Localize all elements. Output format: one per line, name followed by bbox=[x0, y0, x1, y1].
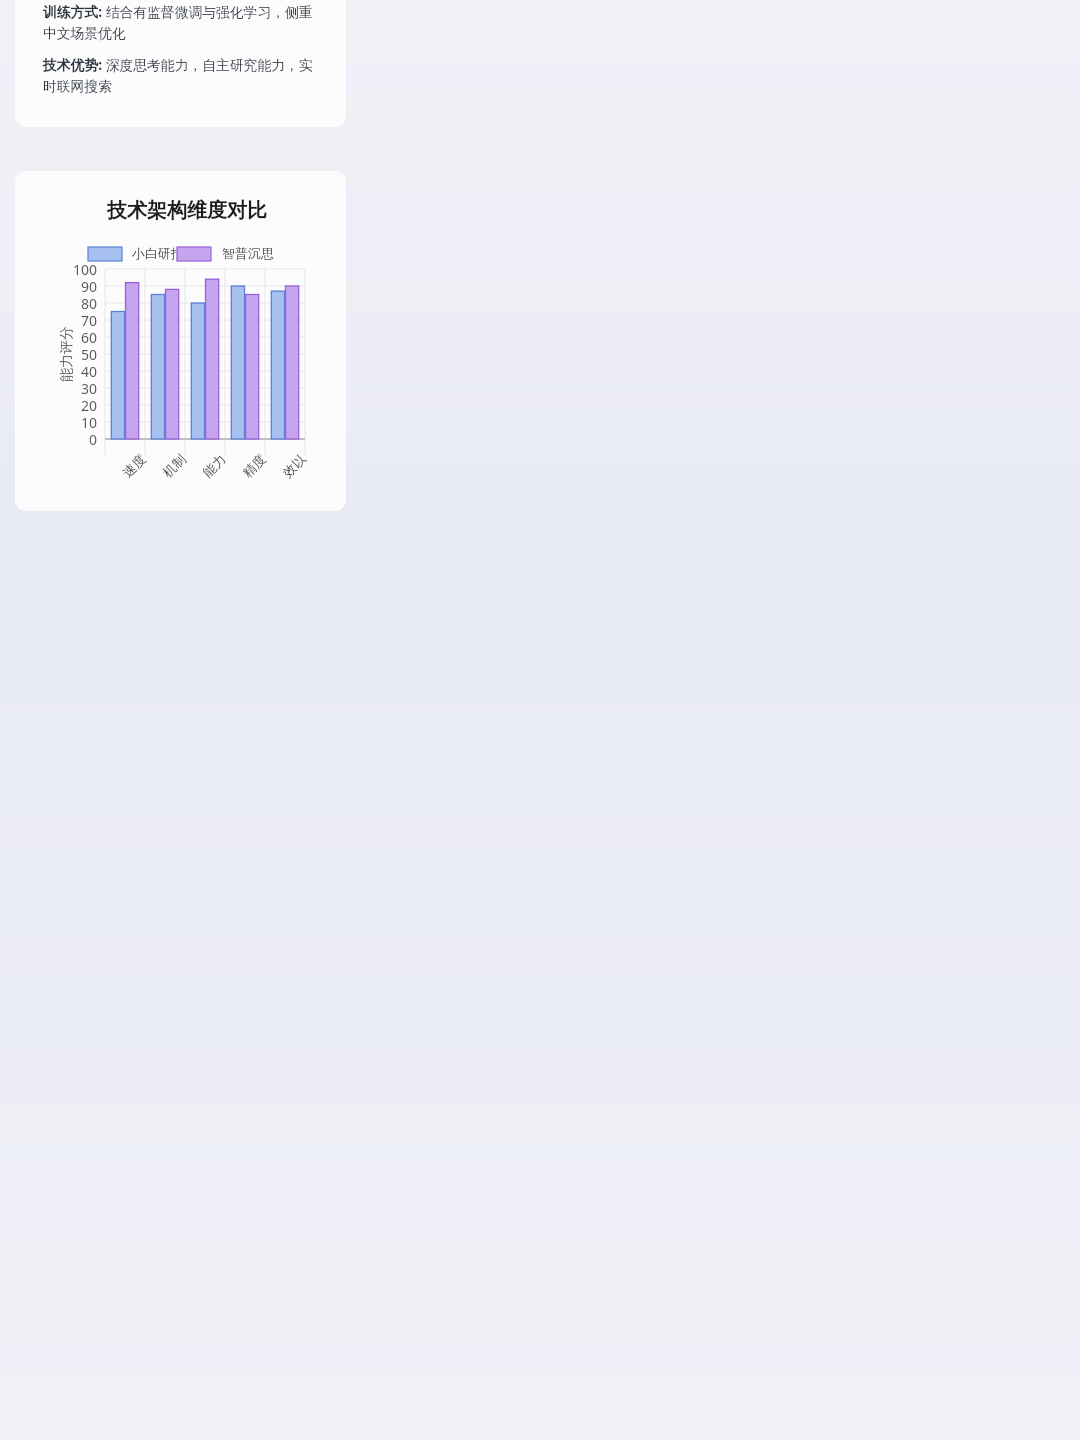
staticText: 技术优势: 深度思考能力，自主研究能力，实时联网搜索 bbox=[43, 55, 324, 95]
staticText: 技术架构维度对比 bbox=[107, 198, 267, 223]
button[interactable]: 训练方式: 结合有监督微调与强化学习，侧重中文场景优化 bbox=[15, 0, 346, 127]
staticText: 训练方式: 结合有监督微调与强化学习，侧重中文场景优化 bbox=[43, 2, 324, 42]
button[interactable]: 技术架构维度对比 bbox=[15, 171, 346, 511]
